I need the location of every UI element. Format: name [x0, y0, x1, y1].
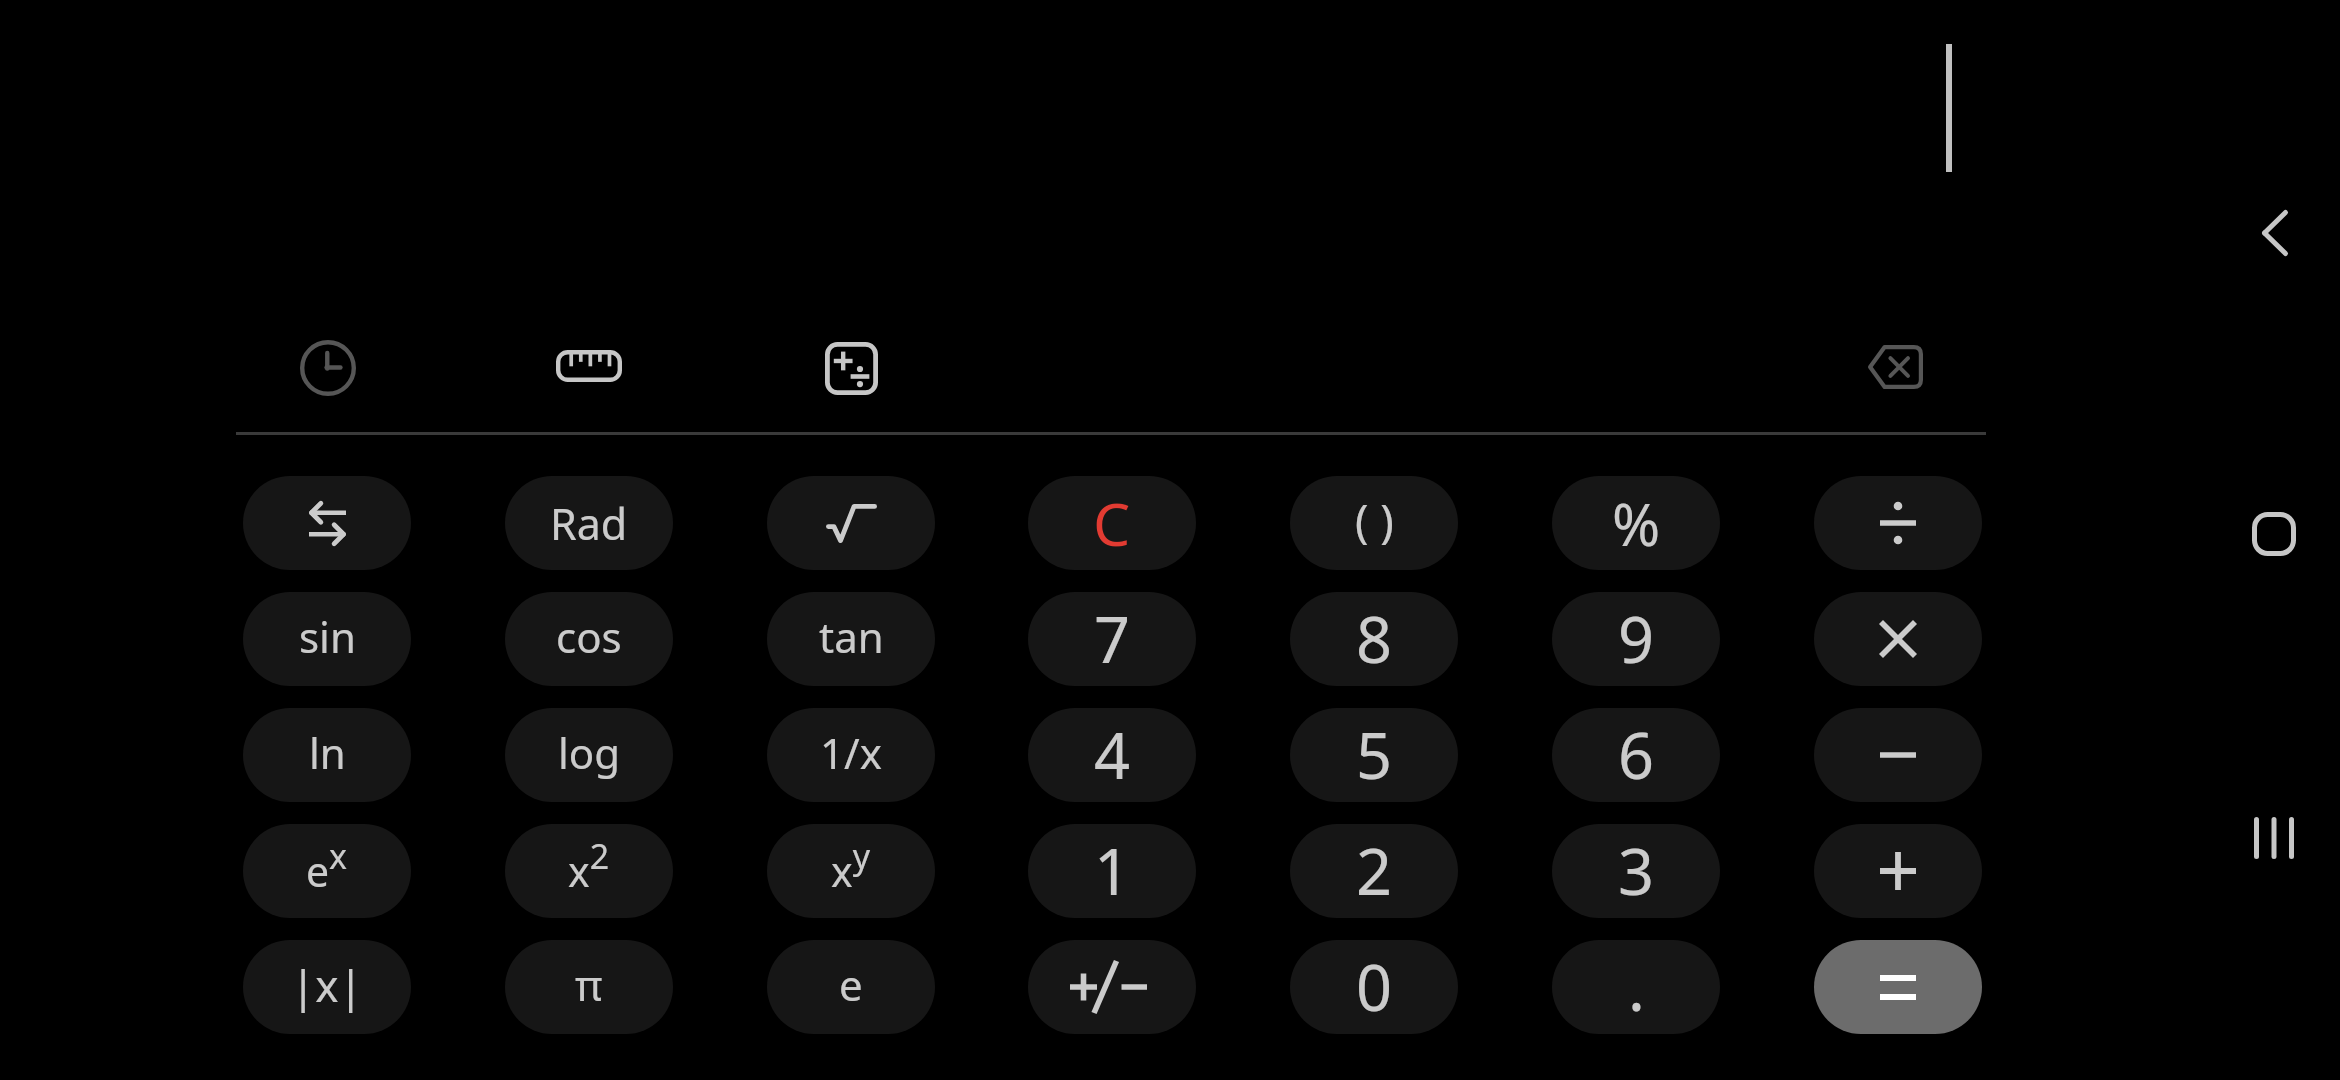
button[interactable]: Multiply [1814, 592, 1982, 686]
button[interactable]: Square root [767, 476, 935, 570]
button[interactable]: xy [767, 824, 935, 918]
button[interactable]: Divide [1814, 476, 1982, 570]
button[interactable]: Calculator [809, 326, 893, 410]
staticText: 8 [1356, 596, 1393, 682]
button[interactable]: 2 [1290, 824, 1458, 918]
other: Toggle keypad [309, 502, 346, 545]
staticText: tan [819, 608, 884, 665]
staticText: e [839, 956, 863, 1013]
staticText: 9 [1618, 596, 1655, 682]
staticText: 1 [1094, 828, 1131, 914]
button[interactable]: Plus [1814, 824, 1982, 918]
button[interactable]: 9 [1552, 592, 1720, 686]
staticText: % [1612, 484, 1661, 563]
button[interactable]: . [1552, 940, 1720, 1034]
staticText: 6 [1618, 712, 1655, 798]
button[interactable]: 0 [1290, 940, 1458, 1034]
button[interactable]: sin [243, 592, 411, 686]
staticText: 1/x [820, 724, 882, 781]
button[interactable]: Back [2230, 188, 2320, 278]
button[interactable]: |x| [243, 940, 411, 1034]
other: Equals [1880, 975, 1916, 1000]
button[interactable]: 1 [1028, 824, 1196, 918]
button[interactable]: Unit converter [547, 324, 631, 408]
button[interactable]: Toggle keypad [243, 476, 411, 570]
button[interactable]: % [1552, 476, 1720, 570]
staticText: xy [831, 833, 871, 899]
button[interactable]: ex [243, 824, 411, 918]
button[interactable]: x2 [505, 824, 673, 918]
button[interactable]: Recent apps [2229, 793, 2319, 883]
other: Plus [1880, 852, 1916, 890]
button[interactable]: log [505, 708, 673, 802]
button[interactable]: Backspace [1853, 325, 1937, 409]
staticText: 3 [1618, 828, 1655, 914]
other: Divide [1880, 503, 1916, 543]
button[interactable]: 1/x [767, 708, 935, 802]
button[interactable]: 5 [1290, 708, 1458, 802]
button[interactable]: e [767, 940, 935, 1034]
button[interactable]: 7 [1028, 592, 1196, 686]
staticText: |x| [291, 955, 363, 1015]
button[interactable]: 3 [1552, 824, 1720, 918]
staticText: x2 [568, 833, 610, 899]
staticText: . [1628, 944, 1645, 1030]
button[interactable]: Equals [1814, 940, 1982, 1034]
staticText: Rad [550, 494, 628, 553]
button[interactable]: π [505, 940, 673, 1034]
button[interactable]: Minus [1814, 708, 1982, 802]
staticText: 7 [1094, 596, 1131, 682]
staticText: sin [299, 608, 356, 665]
button[interactable]: tan [767, 592, 935, 686]
staticText: ln [309, 724, 346, 781]
button[interactable]: cos [505, 592, 673, 686]
button[interactable]: 8 [1290, 592, 1458, 686]
other: Plus minus [1070, 961, 1147, 1013]
staticText: log [558, 724, 621, 781]
other: Minus [1880, 752, 1916, 758]
staticText: cos [556, 608, 622, 665]
staticText: 0 [1356, 944, 1393, 1030]
button[interactable]: 4 [1028, 708, 1196, 802]
staticText: ( ) [1355, 490, 1394, 551]
staticText: 4 [1094, 712, 1131, 798]
staticText: 5 [1356, 712, 1393, 798]
other: Square root [826, 504, 877, 543]
other: Multiply [1881, 622, 1915, 656]
button[interactable]: ln [243, 708, 411, 802]
button[interactable]: ( ) [1290, 476, 1458, 570]
button[interactable]: C [1028, 476, 1196, 570]
staticText: 2 [1356, 828, 1393, 914]
button[interactable]: History [287, 327, 369, 409]
button[interactable]: Rad [505, 476, 673, 570]
staticText: π [575, 956, 603, 1013]
button[interactable]: Home [2229, 489, 2319, 579]
staticText: ex [306, 833, 348, 899]
staticText: C [1093, 483, 1131, 563]
button[interactable]: 6 [1552, 708, 1720, 802]
button[interactable]: Plus minus [1028, 940, 1196, 1034]
